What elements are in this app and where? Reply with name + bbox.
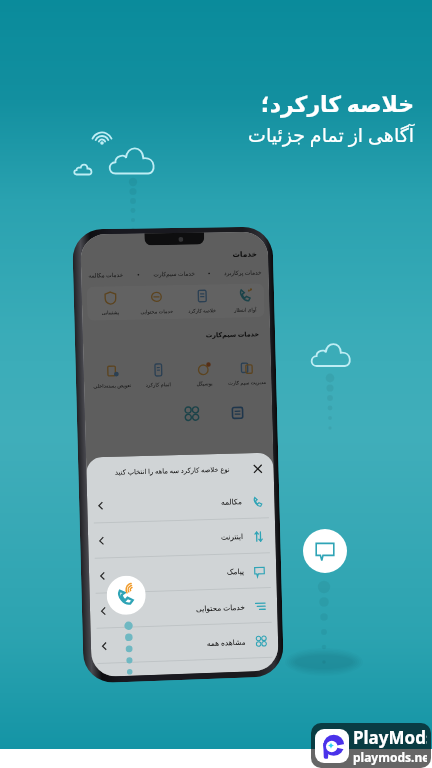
button[interactable]: خدمات محتوایی <box>90 588 278 629</box>
staticText: بوسیگل <box>196 380 213 387</box>
staticText: تعویض بسته‌داخلی <box>93 382 131 390</box>
button[interactable]: Messages <box>303 529 347 573</box>
staticText: خدمات محتوایی <box>196 602 246 613</box>
staticText: اینترنت <box>221 532 244 542</box>
staticText: خدمات <box>232 250 257 259</box>
button[interactable]: اتمام کارکرد <box>135 362 181 389</box>
button[interactable]: پیامک <box>89 553 277 594</box>
button[interactable]: خدمات مکالمه <box>88 271 123 280</box>
staticText: آوای انتظار <box>234 306 257 314</box>
button[interactable]: خلاصه کارکرد <box>179 288 225 315</box>
staticText: آگاهی از تمام جزئیات <box>248 122 414 148</box>
staticText: playmods.net <box>353 749 427 765</box>
button[interactable]: آوای انتظار <box>224 287 265 314</box>
staticText: خلاصه کارکرد؛ <box>260 88 414 118</box>
staticText: خدمات مکالمه <box>88 271 123 280</box>
button[interactable]: خدمات پرکاربرد <box>224 268 262 277</box>
staticText: پیامک <box>227 567 245 576</box>
staticText: خدمات پرکاربرد <box>224 268 262 277</box>
staticText: اتمام کارکرد <box>145 381 171 389</box>
staticText: خدمات محتوایی <box>140 308 173 316</box>
button[interactable]: مشاهده همه <box>90 623 278 664</box>
staticText: مدیریت سیم کارت <box>228 379 267 387</box>
button[interactable]: بوسیگل <box>181 361 227 387</box>
button[interactable]: اینترنت <box>88 518 276 559</box>
button[interactable]: خدمات سیم‌کارت <box>153 270 195 278</box>
staticText: خدمات سیم‌کارت <box>153 270 195 278</box>
button[interactable]: Call <box>106 575 146 615</box>
staticText: نوع خلاصه کارکرد سه ماهه را انتخاب کنید <box>114 465 230 477</box>
staticText: مشاهده همه <box>207 637 247 648</box>
button[interactable]: Close <box>251 462 265 476</box>
button[interactable]: مکالمه <box>87 483 275 524</box>
button[interactable]: تعویض بسته‌داخلی <box>89 363 135 390</box>
staticText: مکالمه <box>221 497 243 507</box>
staticText: خدمات سیم‌کارت <box>206 329 259 339</box>
staticText: پشتیبانی <box>101 309 119 315</box>
button[interactable]: مدیریت سیم کارت <box>226 360 267 387</box>
staticText: PlayMods <box>353 726 427 749</box>
button[interactable]: پشتیبانی <box>87 290 133 316</box>
button[interactable]: خدمات محتوایی <box>133 289 179 316</box>
staticText: خلاصه کارکرد <box>188 307 216 315</box>
